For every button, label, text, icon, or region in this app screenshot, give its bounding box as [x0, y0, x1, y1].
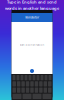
staticText: Start a conversation [19, 43, 44, 47]
staticText: Type in English and send [7, 0, 57, 4]
staticText: words in another language [5, 5, 59, 11]
staticText: Translator [25, 16, 39, 19]
